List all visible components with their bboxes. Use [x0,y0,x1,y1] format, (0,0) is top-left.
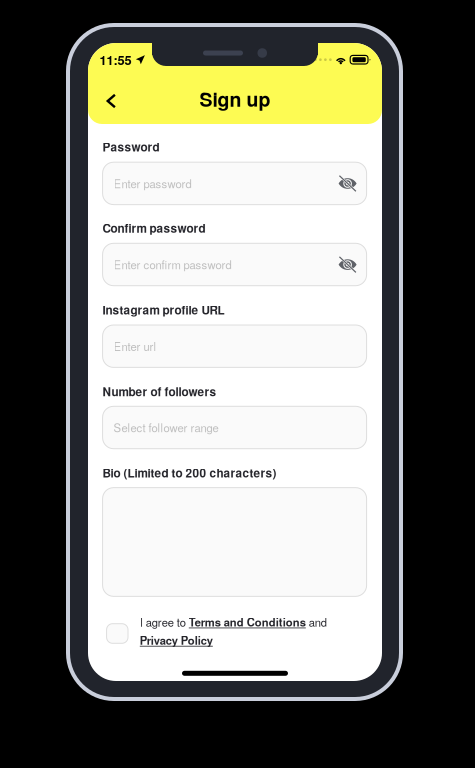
staticText: Instagram profile URL [103,301,225,318]
button[interactable]: Back [93,83,129,119]
button[interactable]: Terms and Conditions [189,614,306,630]
button[interactable]: Enter confirm password [103,243,367,286]
staticText: Number of followers [103,383,217,400]
button[interactable]: Privacy Policy [140,632,213,648]
staticText: Privacy Policy [140,632,213,648]
button[interactable]: Enter url [103,325,367,367]
staticText: Enter password [114,175,192,191]
staticText: and [306,614,327,630]
staticText: Enter url [114,338,157,354]
staticText: Terms and Conditions [189,614,306,630]
staticText: Confirm password [103,220,206,236]
staticText: Password [103,138,160,155]
button[interactable]: I agree to terms [107,624,128,643]
staticText: I agree to [140,614,189,630]
staticText: Sign up [199,85,270,113]
button[interactable]: Enter password [103,162,367,205]
staticText: Select follower range [114,419,219,435]
staticText: 11:55 [99,50,131,69]
staticText: Enter confirm password [114,256,232,272]
button[interactable]: Select follower range [103,406,367,449]
staticText: Bio (Limited to 200 characters) [103,464,277,481]
